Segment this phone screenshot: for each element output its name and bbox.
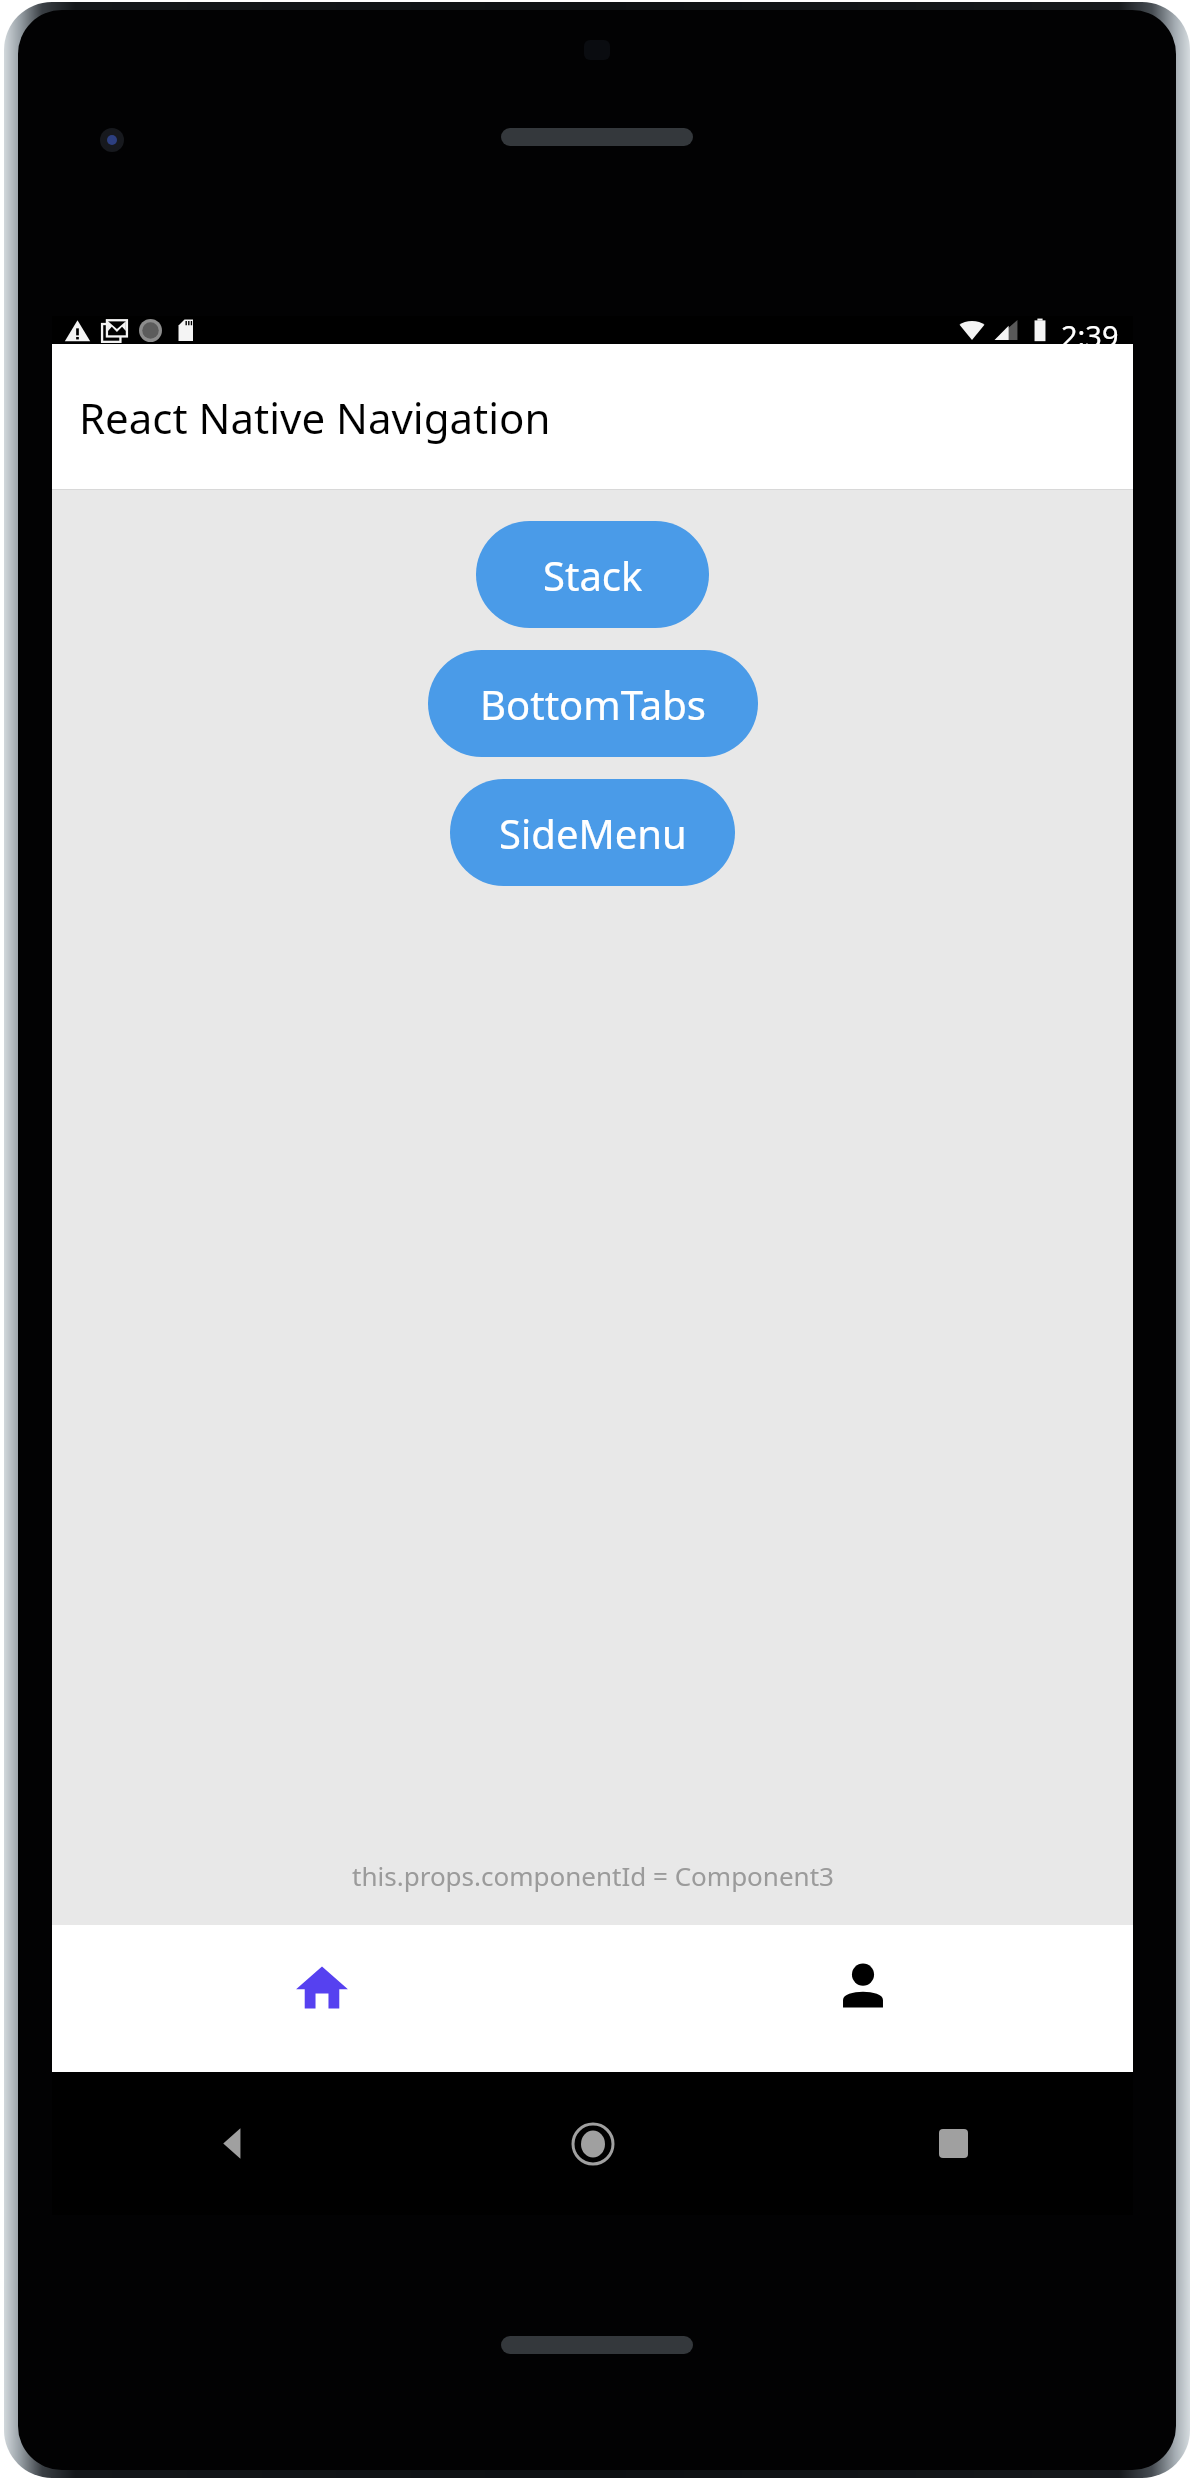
button[interactable]: Home (52, 1925, 592, 2072)
staticText: SideMenu (499, 806, 687, 860)
staticText: 2:39 (1061, 316, 1119, 344)
button[interactable]: Back (52, 2072, 413, 2215)
staticText: BottomTabs (480, 677, 706, 731)
staticText: Stack (543, 548, 643, 602)
button[interactable]: Stack (476, 521, 709, 628)
button[interactable]: Recents (773, 2072, 1133, 2215)
staticText: React Native Navigation (79, 389, 551, 446)
staticText: this.props.componentId = Component3 (352, 1858, 834, 1893)
button[interactable]: SideMenu (450, 779, 735, 886)
button[interactable]: Home (413, 2072, 773, 2215)
button[interactable]: Profile (592, 1925, 1133, 2072)
button[interactable]: BottomTabs (428, 650, 758, 757)
